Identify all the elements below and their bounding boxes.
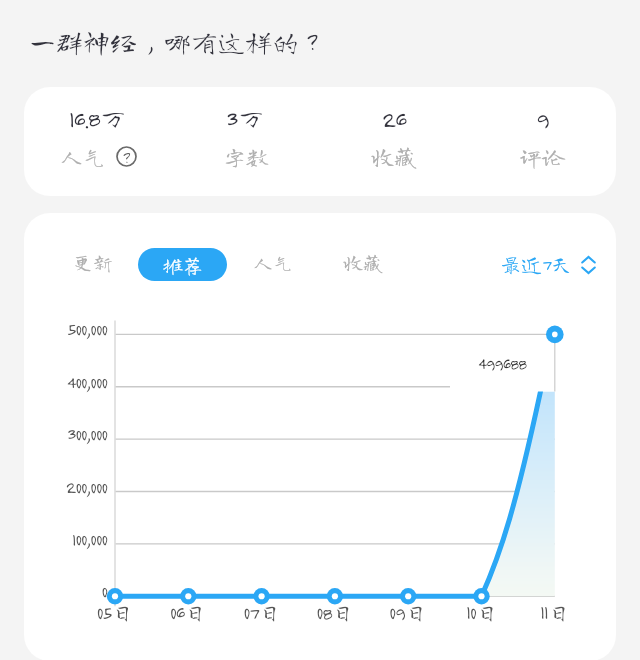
staticText: 26 <box>382 104 406 132</box>
button[interactable]: 26 <box>320 87 468 196</box>
button[interactable]: 3万 <box>172 87 320 196</box>
button[interactable]: 推荐 <box>138 248 227 281</box>
staticText: 500,000 <box>24 319 107 340</box>
staticText: 08日 <box>305 602 365 624</box>
staticText: 收藏 <box>343 252 383 272</box>
staticText: 05日 <box>85 602 145 624</box>
staticText: 收藏 <box>371 145 417 168</box>
staticText: 100,000 <box>24 529 107 550</box>
staticText: 3万 <box>226 104 266 132</box>
button[interactable]: 16.8万 <box>24 87 172 196</box>
staticText: 更新 <box>73 252 113 272</box>
staticText: 评论 <box>519 145 565 168</box>
button[interactable]: 收藏 <box>331 245 395 278</box>
staticText: 人气 <box>253 252 293 272</box>
staticText: 07日 <box>232 602 292 624</box>
staticText: ? <box>123 148 130 166</box>
staticText: 400,000 <box>24 372 107 393</box>
button[interactable]: 人气 <box>241 245 305 278</box>
staticText: 11日 <box>525 602 585 624</box>
staticText: 推荐 <box>163 255 203 275</box>
staticText: 最近7天 <box>500 254 572 275</box>
staticText: 人气 <box>60 145 106 168</box>
staticText: 200,000 <box>24 477 107 498</box>
staticText: 300,000 <box>24 424 107 445</box>
staticText: 一群神经，哪有这样的？ <box>29 28 326 55</box>
staticText: 499688 <box>478 354 527 373</box>
staticText: 09日 <box>378 602 438 624</box>
button[interactable]: Help about popularity <box>116 146 137 167</box>
button[interactable]: 更新 <box>61 245 125 278</box>
button[interactable]: 最近7天 <box>500 248 596 281</box>
staticText: 0 <box>24 581 107 602</box>
staticText: 06日 <box>158 602 218 624</box>
button[interactable]: 9 <box>468 87 616 196</box>
staticText: 9 <box>536 104 549 132</box>
staticText: 10日 <box>452 602 512 624</box>
staticText: 16.8万 <box>69 104 128 132</box>
staticText: 字数 <box>223 145 269 168</box>
